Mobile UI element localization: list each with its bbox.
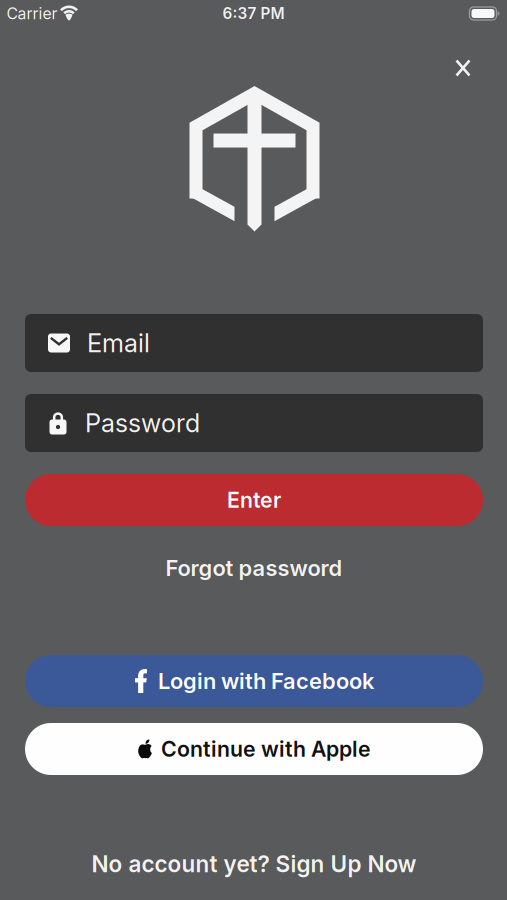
staticText: Login with Facebook (158, 668, 374, 694)
staticText: Carrier (6, 4, 57, 23)
button[interactable]: Login with Facebook (25, 655, 483, 707)
staticText: Enter (227, 487, 281, 513)
textField[interactable]: Password (25, 394, 483, 452)
staticText: Email (87, 328, 150, 358)
textField[interactable]: Email (25, 314, 483, 372)
button[interactable]: Forgot password (165, 555, 342, 581)
button[interactable]: Continue with Apple (25, 723, 483, 775)
staticText: Password (85, 408, 200, 438)
staticText: No account yet? Sign Up Now (91, 850, 416, 878)
button[interactable]: Enter (25, 474, 483, 526)
button[interactable]: No account yet? Sign Up Now (91, 850, 416, 878)
button[interactable]: Close (448, 53, 478, 83)
staticText: Forgot password (165, 555, 342, 581)
staticText: 6:37 PM (222, 4, 284, 23)
staticText: Continue with Apple (161, 736, 371, 762)
